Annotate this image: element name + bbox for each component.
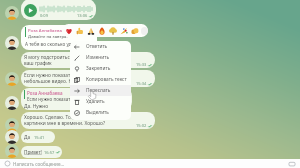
button[interactable] [74, 25, 85, 36]
staticText: Выделить [86, 109, 109, 116]
button[interactable]: Ответить [70, 41, 131, 52]
button[interactable] [96, 25, 107, 36]
staticText: Переслать [86, 87, 111, 94]
button[interactable]: Emoji [5, 161, 10, 166]
staticText: 0:09 [40, 13, 48, 18]
button[interactable]: Да [21, 131, 55, 143]
button[interactable]: Camera [289, 161, 295, 167]
staticText: Привет! [24, 149, 42, 155]
staticText: Копировать текст [86, 76, 127, 83]
button[interactable] [63, 25, 74, 36]
button[interactable]: Закрепить [70, 63, 131, 74]
staticText: А тебя во сколько удобнее? [25, 41, 88, 47]
button[interactable]: Роза Аннабаева [21, 88, 132, 110]
button[interactable] [107, 25, 118, 36]
staticText: 15:41 [34, 135, 45, 140]
button[interactable] [129, 25, 140, 36]
button[interactable]: Выделить [70, 107, 131, 118]
staticText: Да [24, 134, 31, 140]
staticText: Хорошо. Сделаю. Тогда жду картинки мне в… [24, 114, 105, 126]
button[interactable] [85, 25, 96, 36]
staticText: 15:33 [136, 62, 147, 67]
staticText: Да. Нужно [24, 103, 49, 110]
button[interactable] [118, 25, 129, 36]
button[interactable]: Я могу подстроиться под ваш график [21, 52, 155, 68]
button[interactable]: More reactions [141, 27, 148, 35]
staticText: 16:57 [44, 150, 55, 155]
button[interactable]: Привет! [21, 146, 62, 158]
button[interactable]: 0:09 [21, 0, 96, 20]
button[interactable]: Хорошо. Сделаю. Тогда жду картинки мне в… [21, 112, 155, 129]
staticText: Если нужно показать... [27, 96, 77, 102]
staticText: Изменить [86, 54, 110, 61]
staticText: 15:02 [136, 123, 147, 128]
button[interactable]: Удалить [70, 96, 131, 107]
button[interactable]: Роза Аннабаева [21, 25, 97, 50]
button[interactable]: Переслать [70, 85, 131, 96]
staticText: Давайте на завтра. [28, 33, 68, 39]
staticText: 13:06 [77, 13, 88, 18]
staticText: Роза Аннабаева [28, 27, 62, 33]
staticText: Написать сообщение... [13, 161, 65, 167]
staticText: 15:34 [136, 81, 147, 86]
staticText: Роза Аннабаева [27, 90, 63, 96]
staticText: Удалить [86, 98, 105, 105]
button[interactable]: Если нужно показать как небольшое видео.… [21, 70, 155, 87]
button[interactable]: Копировать текст [70, 74, 131, 85]
staticText: Закрепить [86, 65, 111, 72]
staticText: Если нужно показать как небольшое видео.… [24, 72, 86, 84]
staticText: Я могу подстроиться под ваш график [24, 54, 83, 66]
button[interactable]: Изменить [70, 52, 131, 63]
staticText: Ответить [86, 43, 108, 50]
